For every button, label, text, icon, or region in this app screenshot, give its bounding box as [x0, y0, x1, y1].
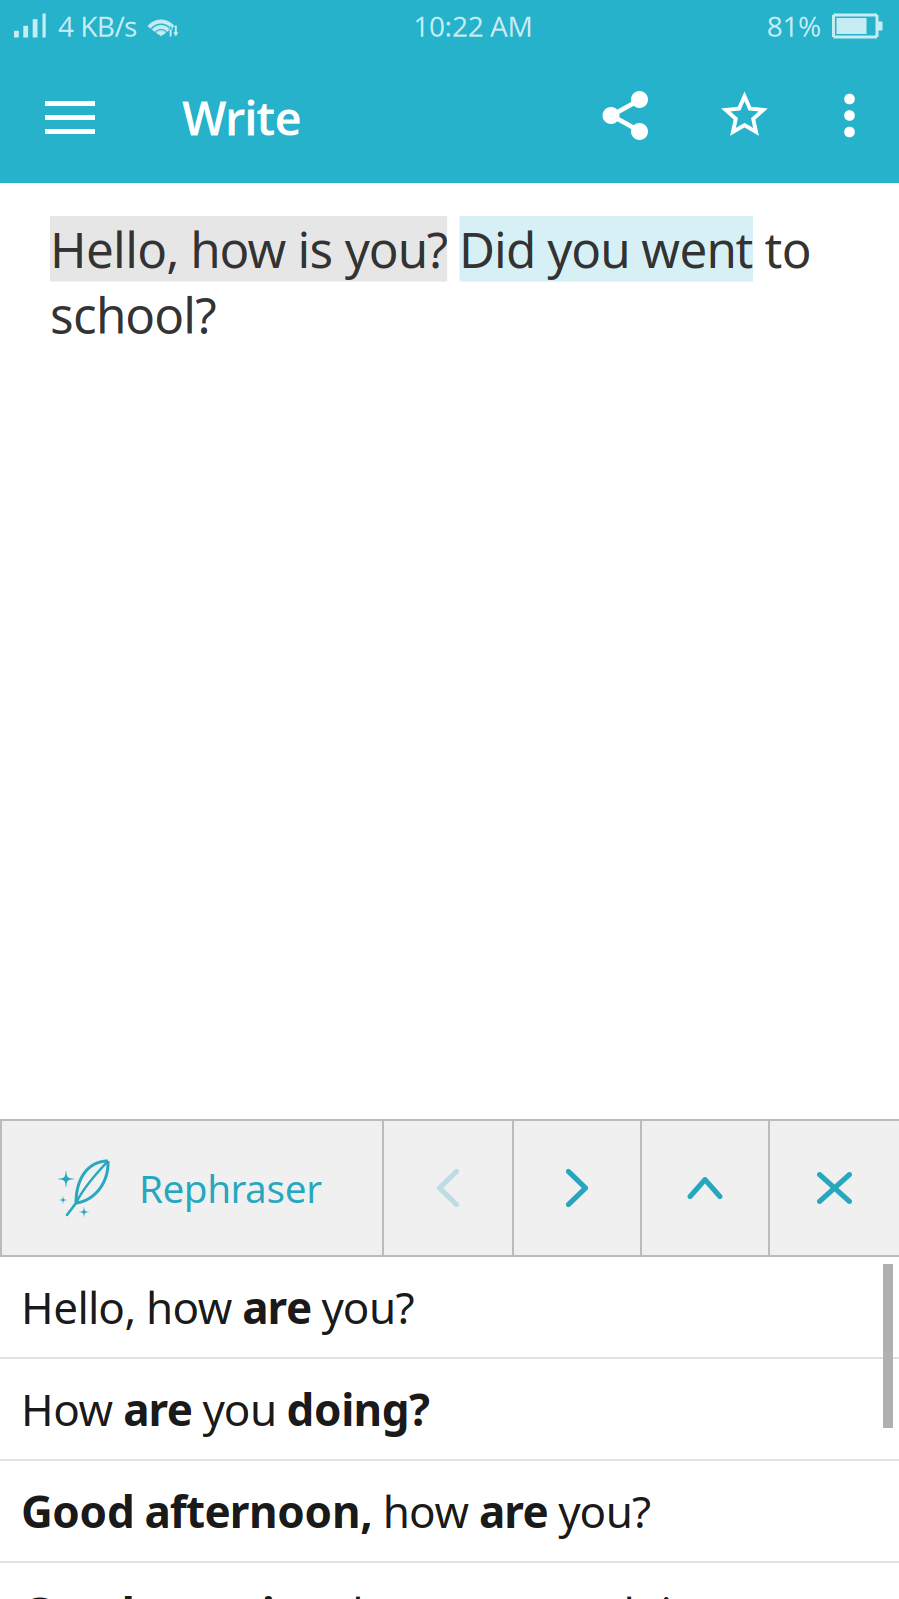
button[interactable]: How are you doing?: [0, 1359, 899, 1459]
staticText: 10:22 AM: [413, 7, 532, 45]
button[interactable]: Close: [770, 1121, 899, 1255]
staticText: 4 KB/s: [58, 7, 137, 45]
button[interactable]: Rephraser: [2, 1121, 382, 1255]
button[interactable]: Next suggestion: [514, 1121, 640, 1255]
staticText: Write: [182, 86, 301, 148]
button[interactable]: Menu: [0, 52, 131, 183]
staticText: Rephraser: [139, 1162, 322, 1214]
staticText: Good morning, how are you doing?: [21, 1584, 742, 1599]
staticText: 81%: [767, 7, 821, 45]
staticText: Good afternoon, how are you?: [21, 1482, 651, 1540]
button[interactable]: Good afternoon, how are you?: [0, 1461, 899, 1561]
button[interactable]: Good morning, how are you doing?: [0, 1563, 899, 1599]
staticText: How are you doing?: [21, 1380, 430, 1438]
button[interactable]: Collapse: [642, 1121, 768, 1255]
button[interactable]: More options: [804, 50, 895, 185]
button[interactable]: Share: [566, 50, 685, 185]
button[interactable]: Previous suggestion: [384, 1121, 512, 1255]
staticText: Hello, how are you?: [21, 1278, 414, 1336]
staticText: Hello, how is you? Did you went to schoo…: [50, 216, 812, 347]
button[interactable]: Hello, how are you?: [0, 1257, 899, 1357]
button[interactable]: Favorite: [685, 51, 804, 184]
